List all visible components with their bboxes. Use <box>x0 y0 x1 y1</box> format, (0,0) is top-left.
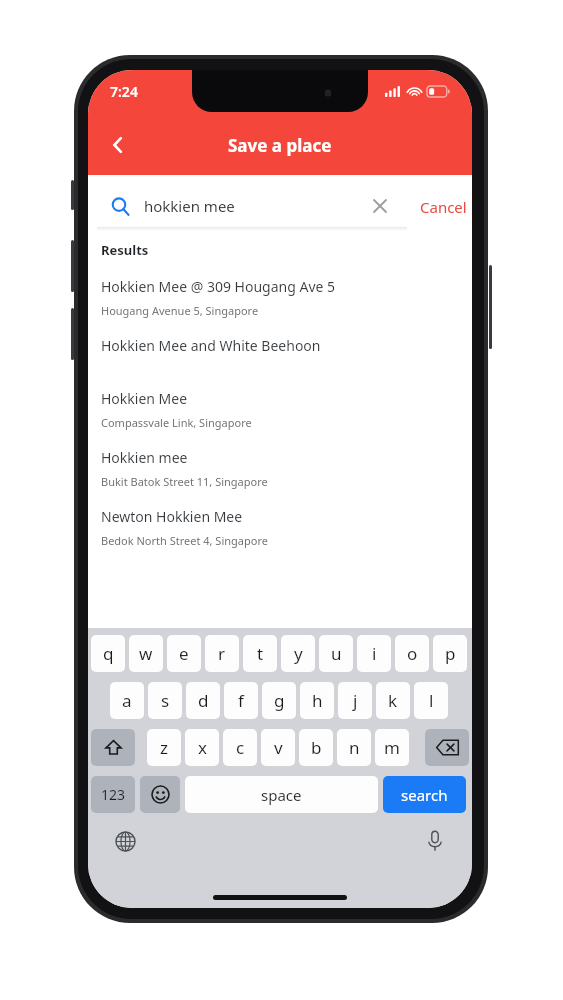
button[interactable]: Clear <box>367 193 393 219</box>
button[interactable]: n <box>337 729 371 766</box>
button[interactable]: Shift <box>91 729 135 766</box>
button[interactable]: c <box>223 729 257 766</box>
staticText: Hokkien Mee @ 309 Hougang Ave 5 <box>101 277 336 296</box>
staticText: z <box>160 736 168 759</box>
staticText: g <box>274 689 285 712</box>
button[interactable]: Hokkien Mee and White Beehoon <box>88 336 472 355</box>
button[interactable]: y <box>281 635 315 672</box>
staticText: Hougang Avenue 5, Singapore <box>101 303 259 318</box>
button[interactable]: x <box>185 729 219 766</box>
staticText: o <box>407 642 418 665</box>
staticText: s <box>161 689 170 712</box>
staticText: p <box>445 642 456 665</box>
staticText: n <box>349 736 360 759</box>
staticText: Save a place <box>228 134 332 157</box>
button[interactable]: i <box>357 635 391 672</box>
button[interactable]: Hokkien Mee <box>88 389 472 430</box>
button[interactable]: Emoji <box>140 776 180 813</box>
button[interactable]: l <box>414 682 448 719</box>
button[interactable]: Hokkien mee <box>88 448 472 489</box>
staticText: f <box>238 689 244 712</box>
staticText: x <box>198 736 207 759</box>
staticText: u <box>331 642 342 665</box>
staticText: e <box>179 642 189 665</box>
button[interactable]: m <box>375 729 409 766</box>
staticText: 7:24 <box>110 82 138 101</box>
staticText: d <box>198 689 209 712</box>
button[interactable]: z <box>147 729 181 766</box>
staticText: m <box>384 736 400 759</box>
button[interactable]: Newton Hokkien Mee <box>88 507 472 548</box>
button[interactable]: u <box>319 635 353 672</box>
button[interactable]: Backspace <box>425 729 469 766</box>
staticText: t <box>257 642 264 665</box>
staticText: Results <box>101 241 149 259</box>
button[interactable]: s <box>148 682 182 719</box>
staticText: Cancel <box>420 197 467 217</box>
button[interactable]: a <box>110 682 144 719</box>
button[interactable]: h <box>300 682 334 719</box>
staticText: l <box>429 689 434 712</box>
staticText: v <box>274 736 283 759</box>
staticText: Hokkien mee <box>101 448 188 467</box>
staticText: Newton Hokkien Mee <box>101 507 243 526</box>
button[interactable]: Hokkien Mee @ 309 Hougang Ave 5 <box>88 277 472 318</box>
staticText: hokkien mee <box>144 196 235 216</box>
staticText: a <box>122 689 132 712</box>
button[interactable]: j <box>338 682 372 719</box>
button[interactable]: k <box>376 682 410 719</box>
button[interactable]: 123 <box>91 776 135 813</box>
button[interactable]: o <box>395 635 429 672</box>
button[interactable]: b <box>299 729 333 766</box>
staticText: h <box>312 689 323 712</box>
staticText: r <box>218 642 226 665</box>
button[interactable]: Voice input <box>420 826 450 856</box>
staticText: Bedok North Street 4, Singapore <box>101 533 268 548</box>
button[interactable]: space <box>185 776 378 813</box>
button[interactable]: e <box>167 635 201 672</box>
staticText: w <box>139 642 153 665</box>
button[interactable]: Back <box>96 123 140 167</box>
staticText: space <box>261 785 302 805</box>
button[interactable]: hokkien mee <box>97 183 407 229</box>
button[interactable]: d <box>186 682 220 719</box>
button[interactable]: search <box>383 776 466 813</box>
button[interactable]: w <box>129 635 163 672</box>
staticText: Compassvale Link, Singapore <box>101 415 252 430</box>
staticText: c <box>236 736 245 759</box>
button[interactable]: v <box>261 729 295 766</box>
staticText: y <box>294 642 303 665</box>
staticText: Bukit Batok Street 11, Singapore <box>101 474 268 489</box>
staticText: j <box>353 689 358 712</box>
button[interactable]: r <box>205 635 239 672</box>
button[interactable]: Cancel <box>416 191 471 223</box>
staticText: 123 <box>101 785 126 804</box>
staticText: Hokkien Mee and White Beehoon <box>101 336 321 355</box>
staticText: search <box>401 785 448 805</box>
button[interactable]: Change keyboard <box>110 826 140 856</box>
button[interactable]: q <box>91 635 125 672</box>
staticText: q <box>103 642 114 665</box>
staticText: b <box>311 736 322 759</box>
button[interactable]: f <box>224 682 258 719</box>
button[interactable]: p <box>433 635 467 672</box>
staticText: k <box>388 689 398 712</box>
staticText: Hokkien Mee <box>101 389 188 408</box>
staticText: i <box>372 642 377 665</box>
button[interactable]: g <box>262 682 296 719</box>
button[interactable]: t <box>243 635 277 672</box>
